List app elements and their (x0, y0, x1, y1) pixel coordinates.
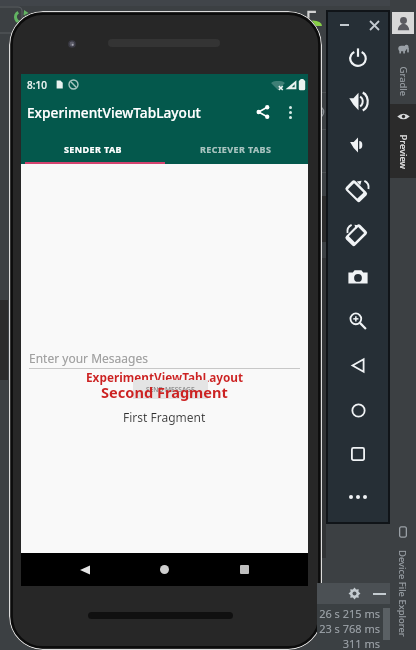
staticText: RECIEVER TABS (200, 143, 272, 155)
button[interactable]: More options (278, 100, 302, 124)
button[interactable]: Zoom (328, 303, 388, 339)
button[interactable]: Rotate right (328, 215, 388, 251)
button[interactable]: SENDER TAB (21, 134, 164, 164)
button[interactable]: Volume up (328, 83, 388, 119)
button[interactable]: Rotate left (328, 171, 388, 207)
staticText: 311 ms (317, 636, 380, 650)
button[interactable]: Preview (390, 104, 416, 178)
staticText: Second Fragment (101, 382, 228, 402)
staticText: ExperimentViewTabLayout (86, 369, 244, 385)
button[interactable]: Recents (228, 553, 261, 586)
button[interactable]: Close (366, 17, 382, 33)
button[interactable]: Overview (328, 436, 388, 472)
button[interactable]: Screenshot (328, 259, 388, 295)
staticText: Enter your Mesaages (29, 350, 148, 366)
button[interactable]: Home (148, 553, 181, 586)
button[interactable]: Home (328, 392, 388, 428)
button[interactable]: Hide (369, 583, 389, 604)
staticText: First Fragment (123, 409, 206, 425)
button[interactable]: Back (328, 347, 388, 383)
button[interactable]: Gradle (390, 36, 416, 104)
staticText: 26 s 215 ms (317, 606, 380, 621)
button[interactable]: Account (392, 12, 414, 34)
button[interactable]: More (328, 479, 388, 515)
staticText: 23 s 768 ms (317, 621, 380, 636)
staticText: Preview (396, 134, 409, 169)
staticText: 8:10 (27, 78, 47, 92)
button[interactable]: Settings (344, 583, 364, 604)
button[interactable]: Minimize (336, 17, 352, 33)
staticText: SENDER TAB (64, 143, 122, 155)
button[interactable]: Share (249, 98, 277, 126)
button[interactable]: Back (68, 553, 101, 586)
button[interactable]: SEND MESSAGE (133, 380, 208, 399)
button[interactable]: Power (328, 40, 388, 76)
staticText: Gradle (396, 66, 409, 96)
staticText: SEND MESSAGE (146, 385, 195, 394)
button[interactable]: Device File Explorer (390, 520, 416, 645)
staticText: Device File Explorer (396, 550, 409, 637)
button[interactable]: RECIEVER TABS (164, 134, 308, 164)
staticText: ExperimentViewTabLayout (27, 103, 201, 122)
button[interactable]: Volume down (328, 127, 388, 163)
